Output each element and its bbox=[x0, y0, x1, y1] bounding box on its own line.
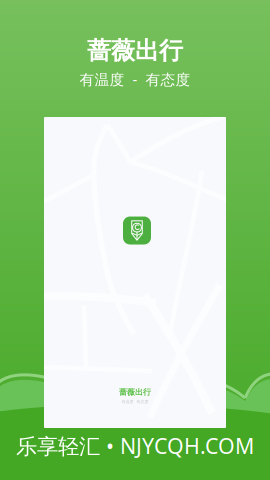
staticText: 蔷薇出行 bbox=[87, 36, 183, 65]
staticText: 乐享轻汇 • NJYCQH.COM bbox=[16, 432, 254, 460]
staticText: 有温度 - 有态度 bbox=[79, 69, 190, 89]
staticText: 蔷薇出行 bbox=[119, 387, 151, 397]
staticText: 有温度 有态度 bbox=[121, 399, 148, 404]
